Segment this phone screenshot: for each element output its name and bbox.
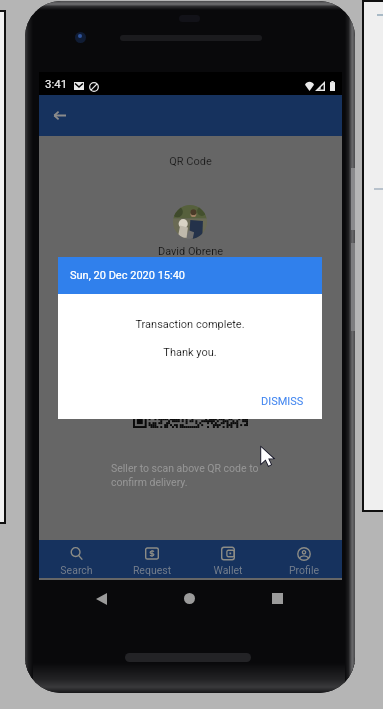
- staticText: Wallet: [190, 564, 266, 576]
- staticText: Thank you.: [58, 346, 322, 359]
- staticText: Profile: [266, 564, 342, 576]
- staticText: Seller to scan above QR code to confirm …: [111, 462, 259, 489]
- staticText: QR Code: [39, 155, 342, 168]
- button[interactable]: Profile: [266, 540, 342, 578]
- button[interactable]: Home: [184, 593, 195, 604]
- button[interactable]: Wallet: [190, 540, 266, 578]
- staticText: DISMISS: [261, 395, 304, 408]
- staticText: Request: [114, 564, 190, 576]
- staticText: Transaction complete.: [58, 318, 322, 331]
- button[interactable]: Search: [39, 540, 114, 578]
- button[interactable]: Navigate up: [39, 95, 80, 136]
- button[interactable]: Back: [96, 593, 107, 605]
- staticText: David Obrene: [39, 245, 342, 258]
- button[interactable]: DISMISS: [255, 390, 309, 412]
- staticText: Sun, 20 Dec 2020 15:40: [70, 269, 186, 282]
- button[interactable]: Request: [114, 540, 190, 578]
- staticText: 3:41: [45, 77, 68, 90]
- staticText: Search: [39, 564, 114, 576]
